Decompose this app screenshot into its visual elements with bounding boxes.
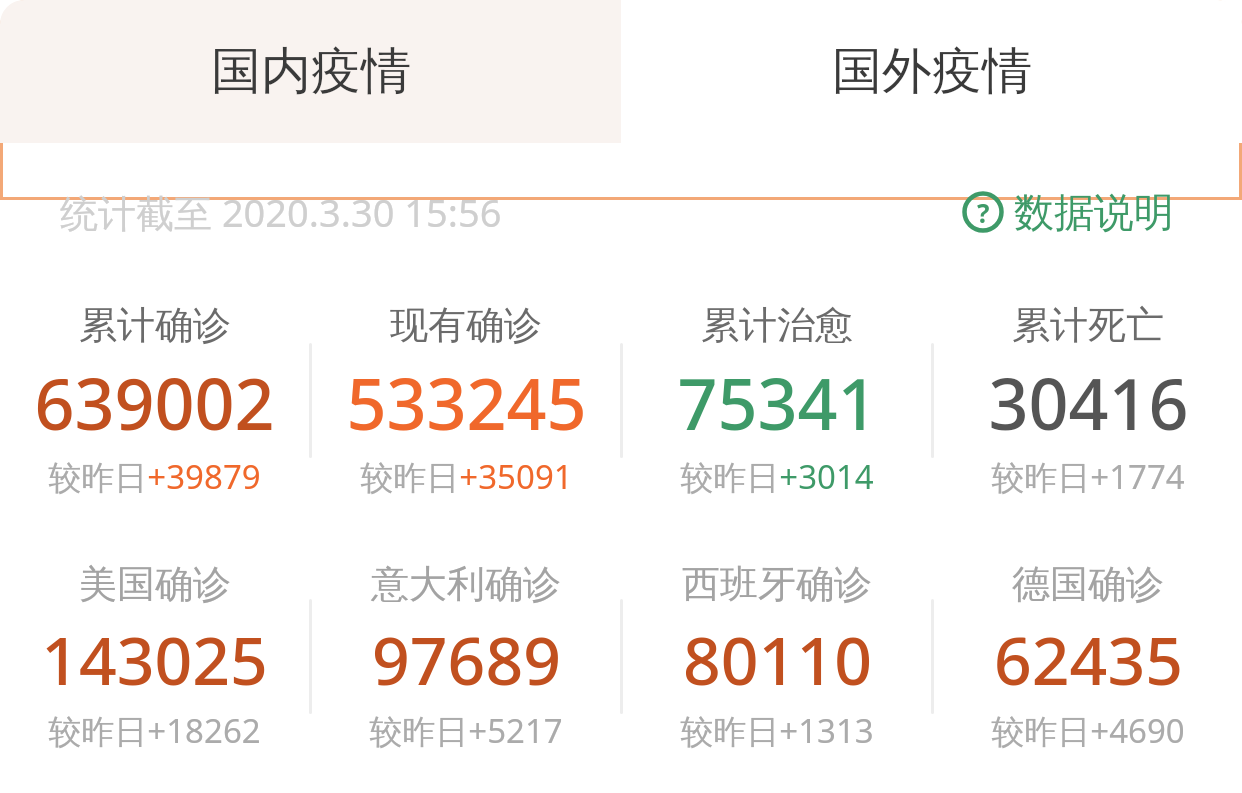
staticText: 累计死亡 xyxy=(1012,301,1164,349)
staticText: 数据说明 xyxy=(1014,187,1174,237)
button[interactable]: 意大利确诊 xyxy=(312,560,620,753)
button[interactable]: 国内疫情 xyxy=(0,0,621,143)
button[interactable]: 德国确诊 xyxy=(934,560,1242,753)
staticText: 累计确诊 xyxy=(79,301,231,349)
staticText: 国内疫情 xyxy=(211,40,411,103)
staticText: 现有确诊 xyxy=(390,301,542,349)
staticText: 美国确诊 xyxy=(79,560,231,608)
staticText: 较昨日+1774 xyxy=(991,454,1185,499)
staticText: 较昨日+5217 xyxy=(369,708,563,753)
button[interactable]: 累计确诊 xyxy=(0,301,309,499)
staticText: ? xyxy=(977,195,990,230)
staticText: 德国确诊 xyxy=(1012,560,1164,608)
staticText: 30416 xyxy=(988,355,1189,450)
staticText: 75341 xyxy=(677,355,878,450)
staticText: 较昨日+39879 xyxy=(48,454,261,499)
staticText: 较昨日+4690 xyxy=(991,708,1185,753)
button[interactable]: 国外疫情 xyxy=(621,0,1242,143)
button[interactable]: 现有确诊 xyxy=(312,301,620,499)
staticText: 97689 xyxy=(372,614,561,704)
staticText: 累计治愈 xyxy=(701,301,853,349)
staticText: 143025 xyxy=(41,614,268,704)
staticText: 较昨日+35091 xyxy=(360,454,573,499)
staticText: 较昨日+18262 xyxy=(48,708,261,753)
staticText: 较昨日+1313 xyxy=(680,708,874,753)
staticText: 西班牙确诊 xyxy=(682,560,872,608)
staticText: 533245 xyxy=(346,355,587,450)
button[interactable]: 西班牙确诊 xyxy=(623,560,931,753)
button[interactable]: 累计死亡 xyxy=(934,301,1242,499)
button[interactable]: 累计治愈 xyxy=(623,301,931,499)
other: 数据说明 xyxy=(962,191,1004,233)
staticText: 意大利确诊 xyxy=(371,560,561,608)
button[interactable]: 美国确诊 xyxy=(0,560,309,753)
staticText: 639002 xyxy=(34,355,275,450)
staticText: 80110 xyxy=(683,614,872,704)
staticText: 统计截至 2020.3.30 15:56 xyxy=(60,186,502,238)
staticText: 62435 xyxy=(994,614,1183,704)
staticText: 国外疫情 xyxy=(832,40,1032,103)
button[interactable]: 数据说明 xyxy=(962,187,1174,237)
staticText: 较昨日+3014 xyxy=(680,454,874,499)
